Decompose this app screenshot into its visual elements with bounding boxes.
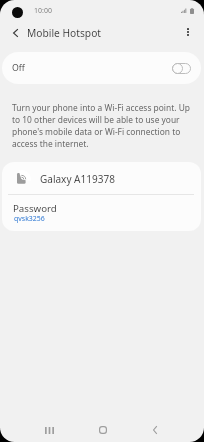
staticText: Mobile Hotspot bbox=[27, 26, 102, 40]
staticText: Galaxy A119378 bbox=[40, 172, 115, 186]
staticText: qvsk3256 bbox=[14, 214, 45, 223]
button[interactable]: Off bbox=[2, 52, 201, 84]
button[interactable]: Home bbox=[88, 415, 118, 442]
button[interactable]: Galaxy A119378 network name bbox=[2, 162, 201, 194]
staticText: Turn your phone into a Wi-Fi access poin… bbox=[12, 102, 194, 150]
button[interactable]: Password bbox=[2, 195, 201, 231]
staticText: Off bbox=[12, 62, 25, 74]
button[interactable]: Recent apps bbox=[34, 415, 64, 442]
staticText: Password bbox=[13, 202, 57, 215]
staticText: 10:00 bbox=[34, 6, 52, 16]
button[interactable]: Navigate up bbox=[1, 18, 30, 47]
button[interactable]: More options bbox=[173, 17, 202, 46]
button[interactable]: Back bbox=[140, 415, 170, 442]
